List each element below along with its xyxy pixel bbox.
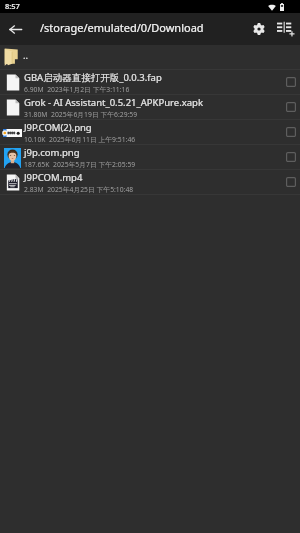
button[interactable]: Add to list [272, 13, 298, 45]
staticText: 8:57 [5, 1, 20, 11]
button[interactable]: Select file [281, 95, 300, 119]
staticText: J9P.COM(2).png [24, 121, 92, 134]
staticText: 187.65K 2025年5月7日 下午2:05:59 [24, 160, 136, 169]
button[interactable]: Select file [281, 70, 300, 94]
button[interactable]: Select file [281, 145, 300, 169]
button[interactable]: j9p.com.png [0, 145, 300, 169]
button[interactable]: Select file [281, 120, 300, 144]
staticText: 2.83M 2025年4月25日 下午5:10:48 [24, 185, 134, 194]
staticText: J9PCOM.mp4 [24, 171, 83, 184]
staticText: /storage/emulated/0/Download [40, 20, 246, 35]
staticText: 10.10K 2025年6月11日 上午9:51:46 [24, 135, 136, 144]
button[interactable]: GBA启动器直接打开版_0.0.3.fap [0, 70, 300, 94]
staticText: 31.80M 2025年6月19日 下午6:29:59 [24, 110, 138, 119]
staticText: Grok - AI Assistant_0.5.21_APKPure.xapk [24, 96, 203, 109]
staticText: 6.90M 2023年1月2日 下午3:11:16 [24, 85, 130, 94]
button[interactable]: Select file [281, 170, 300, 194]
staticText: GBA启动器直接打开版_0.0.3.fap [24, 71, 162, 84]
button[interactable]: Grok - AI Assistant_0.5.21_APKPure.xapk [0, 95, 300, 119]
button[interactable]: J9PCOM.mp4 [0, 170, 300, 194]
staticText: .. [23, 49, 29, 62]
button[interactable]: Settings [246, 13, 272, 45]
button[interactable]: Back [0, 14, 30, 44]
button[interactable]: .. [0, 45, 300, 69]
button[interactable]: J9P.COM(2).png [0, 120, 300, 144]
staticText: j9p.com.png [24, 146, 80, 159]
